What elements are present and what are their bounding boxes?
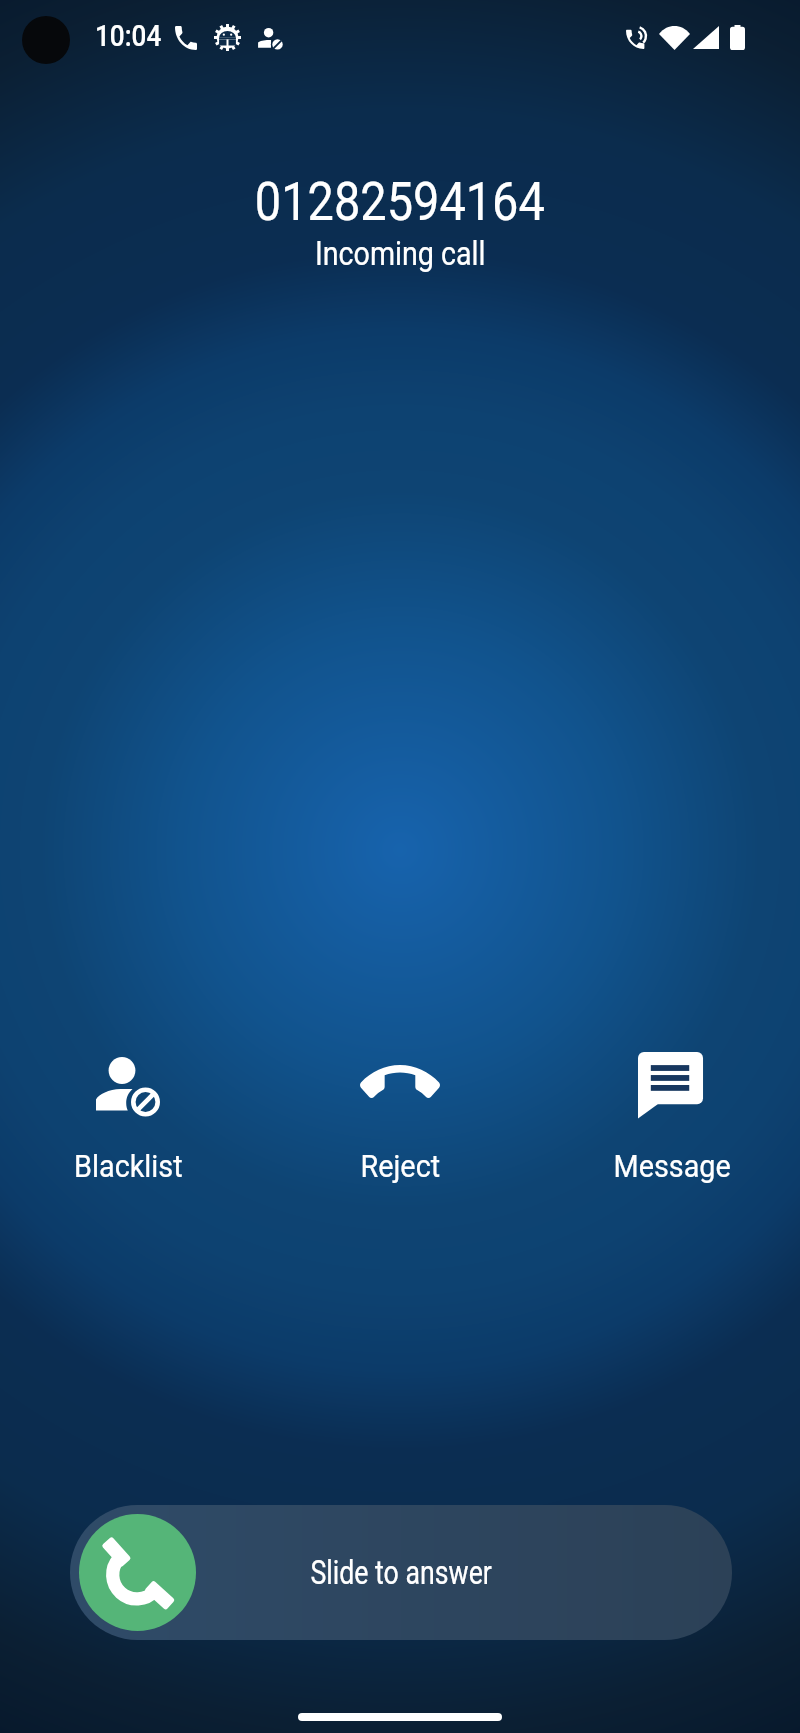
staticText: 01282594164 <box>255 171 545 233</box>
staticText: Message <box>613 1147 731 1185</box>
staticText: Reject <box>360 1147 441 1185</box>
button[interactable]: Message <box>572 1030 772 1200</box>
button[interactable]: Reject <box>300 1030 500 1200</box>
staticText: Slide to answer <box>310 1553 493 1592</box>
button[interactable]: Blacklist <box>28 1030 228 1200</box>
staticText: 10:04 <box>95 19 162 53</box>
button[interactable]: Answer call <box>79 1514 196 1631</box>
button[interactable]: Slide to answer <box>70 1505 732 1640</box>
staticText: Blacklist <box>74 1147 183 1185</box>
staticText: Incoming call <box>315 234 486 273</box>
